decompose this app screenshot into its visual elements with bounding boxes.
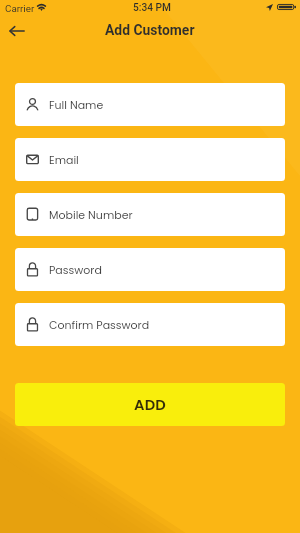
- button[interactable]: Full Name: [15, 83, 285, 126]
- staticText: Carrier: [5, 3, 35, 14]
- button[interactable]: Back: [4, 18, 30, 44]
- staticText: Mobile Number: [49, 207, 133, 222]
- staticText: ADD: [134, 395, 166, 415]
- staticText: Confirm Password: [49, 317, 150, 332]
- button[interactable]: Mobile Number: [15, 193, 285, 236]
- staticText: Full Name: [49, 97, 104, 112]
- button[interactable]: Confirm Password: [15, 303, 285, 346]
- button[interactable]: Email: [15, 138, 285, 181]
- staticText: 5:34 PM: [133, 2, 172, 14]
- button[interactable]: ADD: [15, 383, 285, 426]
- staticText: Password: [49, 262, 102, 277]
- staticText: Email: [49, 152, 79, 167]
- staticText: Add Customer: [105, 22, 195, 38]
- button[interactable]: Password: [15, 248, 285, 291]
